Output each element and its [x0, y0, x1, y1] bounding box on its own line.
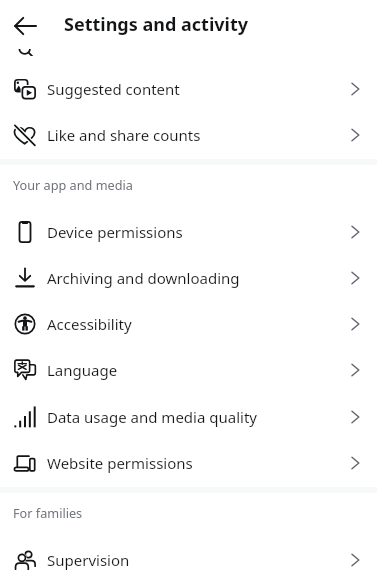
button[interactable]: Back	[7, 8, 43, 44]
staticText: Website permissions	[47, 453, 345, 473]
button[interactable]: Language	[0, 347, 377, 393]
button[interactable]: Accessibility	[0, 301, 377, 347]
button[interactable]: Suggested content	[0, 66, 377, 112]
button[interactable]: Content preferences	[0, 10, 377, 56]
staticText: Language	[47, 360, 345, 380]
staticText: For families	[13, 504, 83, 521]
staticText: Settings and activity	[64, 12, 249, 37]
staticText: Like and share counts	[47, 125, 345, 145]
button[interactable]: Like and share counts	[0, 112, 377, 158]
staticText: Accessibility	[47, 314, 345, 334]
staticText: Archiving and downloading	[47, 268, 345, 288]
button[interactable]: Device permissions	[0, 209, 377, 255]
button[interactable]: Data usage and media quality	[0, 394, 377, 440]
staticText: Supervision	[47, 550, 345, 570]
staticText: Suggested content	[47, 79, 345, 99]
button[interactable]: Supervision	[0, 537, 377, 580]
staticText: Data usage and media quality	[47, 407, 345, 427]
staticText: Device permissions	[47, 222, 345, 242]
staticText: Your app and media	[13, 176, 133, 193]
button[interactable]: Archiving and downloading	[0, 255, 377, 301]
button[interactable]: Website permissions	[0, 440, 377, 486]
